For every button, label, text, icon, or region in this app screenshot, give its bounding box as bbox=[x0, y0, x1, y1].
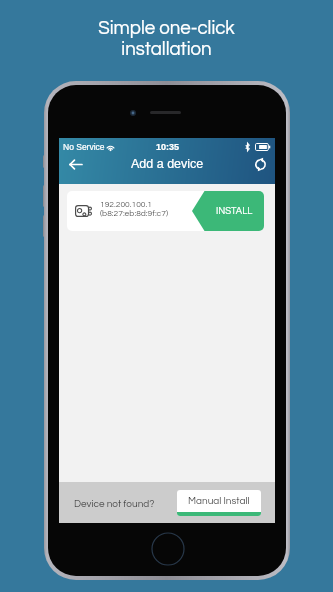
button[interactable]: INSTALL bbox=[192, 191, 264, 231]
staticText: Device not found? bbox=[74, 499, 155, 509]
staticText: (b8:27:eb:8d:9f:c7) bbox=[100, 209, 168, 218]
staticText: installation bbox=[121, 40, 212, 59]
button[interactable]: Back bbox=[59, 149, 91, 179]
button[interactable]: 192.200.100.1 bbox=[67, 191, 264, 231]
staticText: Add a device bbox=[131, 157, 204, 171]
staticText: Manual Install bbox=[188, 496, 250, 506]
button[interactable]: Refresh bbox=[245, 149, 275, 179]
staticText: 192.200.100.1 bbox=[100, 200, 152, 209]
staticText: Simple one-click bbox=[98, 19, 235, 38]
staticText: 10:35 bbox=[156, 142, 180, 152]
staticText: No Service bbox=[63, 142, 105, 151]
staticText: INSTALL bbox=[216, 206, 253, 216]
button[interactable]: Manual Install bbox=[177, 490, 261, 516]
